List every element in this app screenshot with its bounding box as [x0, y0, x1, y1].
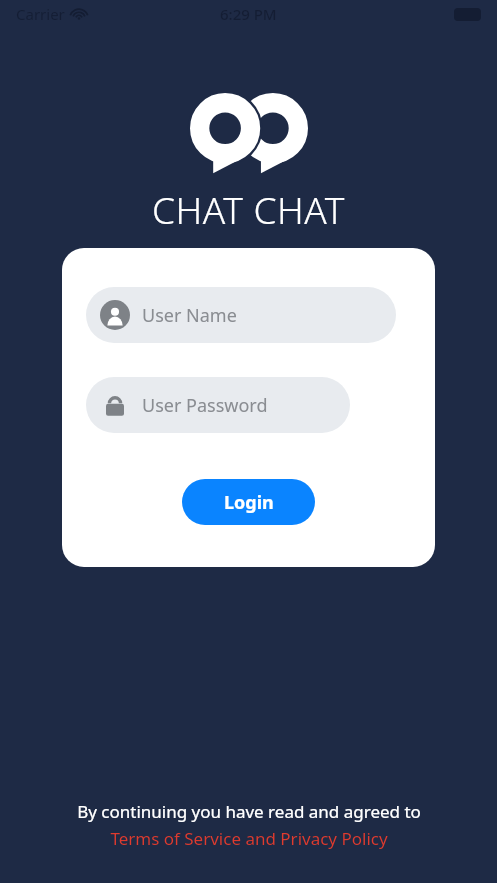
button[interactable]: User Password [86, 377, 350, 433]
button[interactable]: Terms of Service and Privacy Policy [110, 827, 388, 850]
button[interactable]: Login [182, 479, 315, 525]
staticText: User Name [142, 303, 237, 328]
staticText: Terms of Service and Privacy Policy [110, 827, 388, 850]
button[interactable]: User Name [86, 287, 396, 343]
staticText: CHAT CHAT [152, 184, 345, 234]
staticText: By continuing you have read and agreed t… [77, 800, 421, 823]
staticText: 6:29 PM [220, 4, 277, 24]
staticText: User Password [142, 393, 268, 418]
staticText: Login [224, 490, 274, 515]
staticText: Carrier [16, 4, 65, 24]
